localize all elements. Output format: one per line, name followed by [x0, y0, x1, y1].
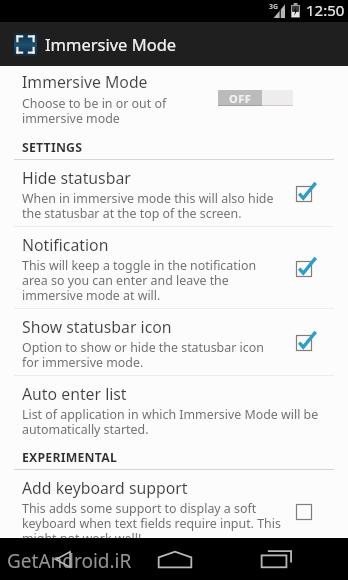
button[interactable]: Notification: [0, 227, 348, 308]
button[interactable]: Toggle immersive mode: [218, 90, 293, 106]
button[interactable]: Unchecked: [288, 494, 320, 530]
button[interactable]: Home: [150, 538, 200, 580]
button[interactable]: Hide statusbar: [0, 160, 348, 226]
staticText: Hide statusbar: [22, 167, 131, 189]
staticText: Option to show or hide the statusbar ico…: [22, 339, 280, 370]
staticText: Immersive Mode: [45, 33, 177, 55]
staticText: This adds some support to display a soft…: [22, 500, 290, 538]
staticText: OFF: [229, 91, 252, 106]
staticText: Auto enter list: [22, 383, 127, 405]
button[interactable]: App icon: [0, 22, 348, 66]
staticText: SETTINGS: [22, 139, 83, 156]
button[interactable]: Auto enter list: [0, 376, 348, 442]
staticText: 3G: [269, 2, 279, 12]
button[interactable]: Recents: [251, 538, 301, 580]
button[interactable]: Add keyboard support: [0, 470, 348, 538]
staticText: This will keep a toggle in the notificat…: [22, 257, 280, 303]
other: App icon: [14, 33, 37, 56]
button[interactable]: Show statusbar icon: [0, 309, 348, 375]
staticText: Add keyboard support: [22, 477, 188, 499]
button[interactable]: Back: [38, 538, 88, 580]
staticText: Choose to be in or out of immersive mode: [22, 95, 202, 126]
staticText: List of application in which Immersive M…: [22, 406, 324, 437]
button[interactable]: Checked: [288, 251, 320, 287]
staticText: Notification: [22, 234, 109, 256]
button[interactable]: Checked: [288, 325, 320, 361]
button[interactable]: Checked: [288, 176, 320, 212]
staticText: 12:50: [306, 0, 345, 20]
staticText: Show statusbar icon: [22, 316, 172, 338]
staticText: EXPERIMENTAL: [22, 449, 117, 466]
staticText: When in immersive mode this will also hi…: [22, 190, 280, 221]
button[interactable]: Immersive Mode: [0, 66, 348, 132]
staticText: Immersive Mode: [22, 71, 148, 93]
staticText: GetAndroid.iR: [7, 548, 132, 574]
